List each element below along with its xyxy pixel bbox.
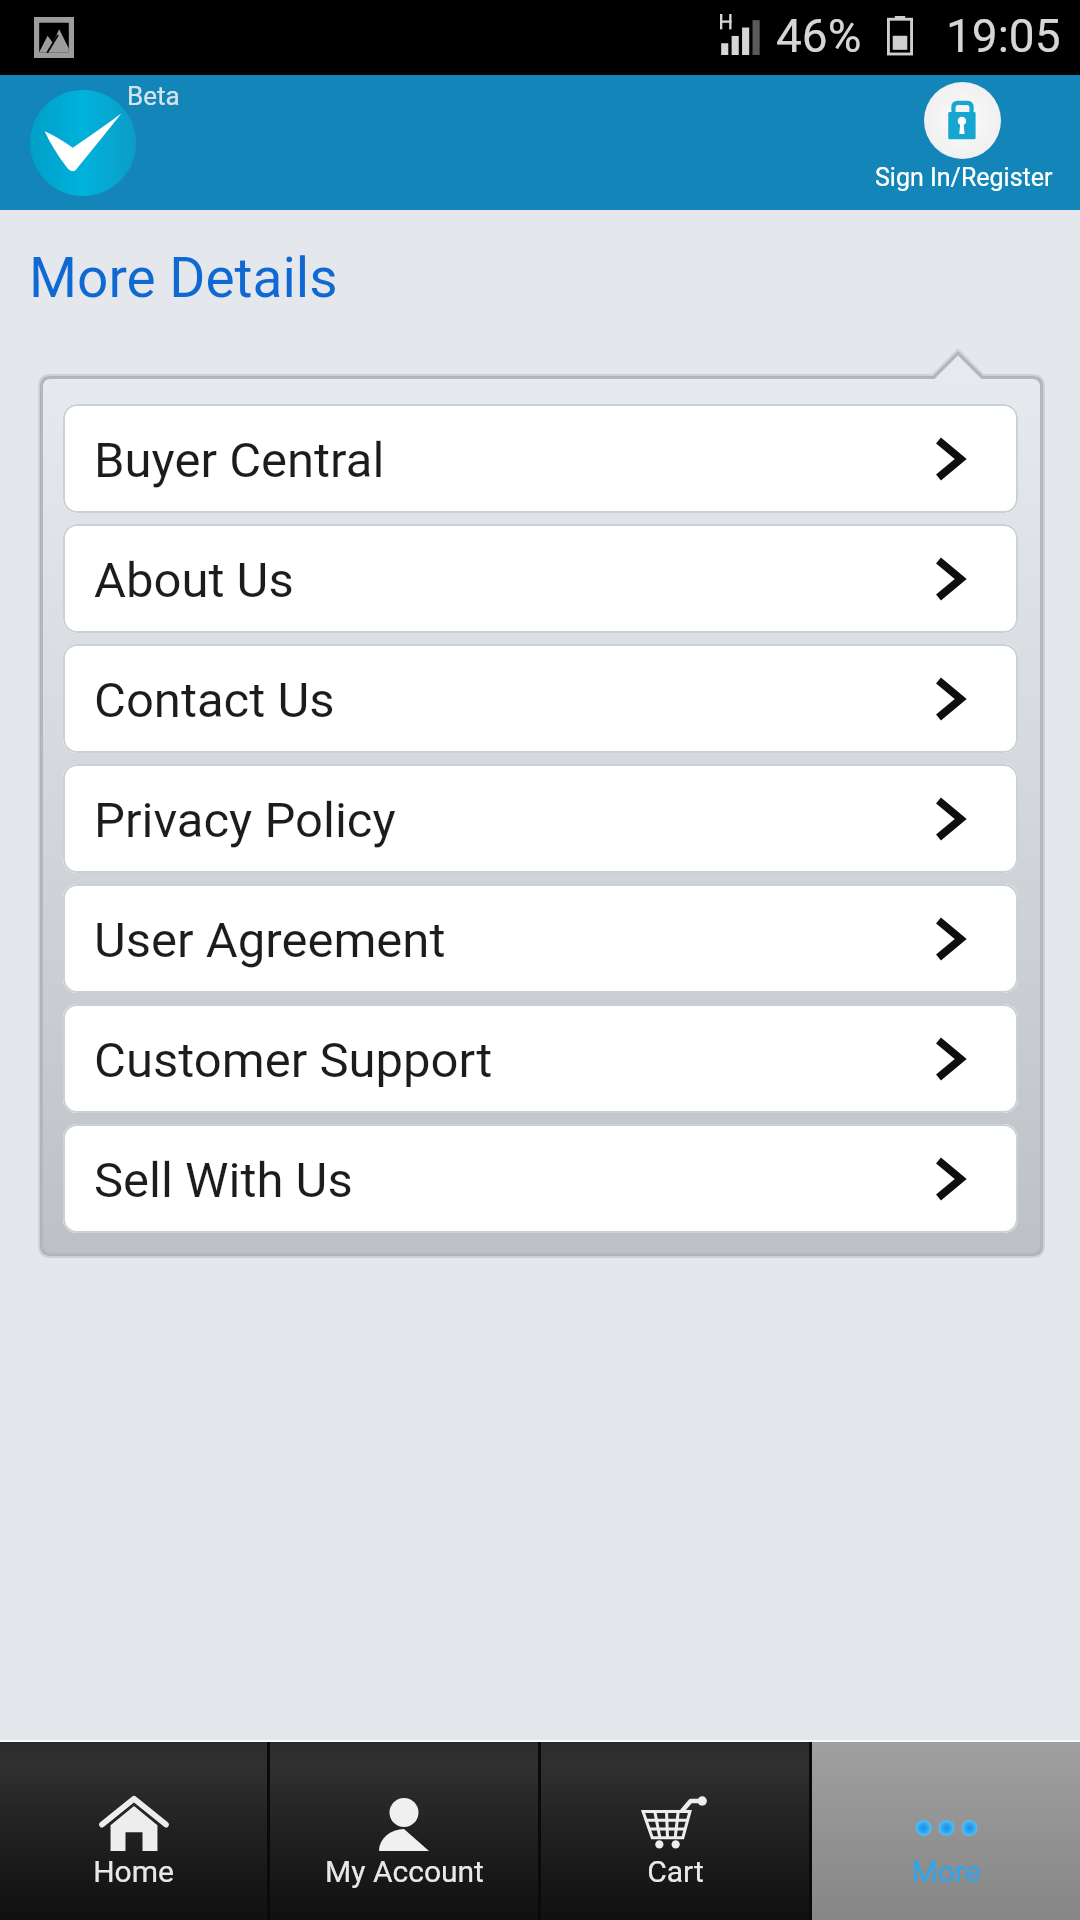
staticText: Privacy Policy bbox=[94, 792, 396, 849]
staticText: About Us bbox=[94, 552, 294, 609]
button[interactable]: Customer Support bbox=[63, 1004, 1018, 1113]
staticText: User Agreement bbox=[94, 912, 446, 969]
staticText: My Account bbox=[325, 1854, 484, 1889]
button[interactable]: Buyer Central bbox=[63, 404, 1018, 513]
staticText: Customer Support bbox=[94, 1032, 493, 1089]
staticText: More bbox=[911, 1854, 981, 1889]
button[interactable]: More bbox=[812, 1742, 1080, 1920]
button[interactable]: Home bbox=[0, 1742, 267, 1920]
button[interactable]: Cart bbox=[541, 1742, 809, 1920]
button[interactable]: Privacy Policy bbox=[63, 764, 1018, 873]
staticText: Beta bbox=[127, 81, 180, 111]
staticText: 19:05 bbox=[946, 9, 1061, 63]
staticText: 46% bbox=[776, 9, 862, 63]
button[interactable]: Sell With Us bbox=[63, 1124, 1018, 1233]
staticText: Sell With Us bbox=[94, 1152, 353, 1209]
staticText: Sign In/Register bbox=[875, 163, 1053, 192]
staticText: Home bbox=[93, 1854, 174, 1889]
button[interactable]: Sign In or Register bbox=[866, 82, 1062, 192]
button[interactable]: About Us bbox=[63, 524, 1018, 633]
staticText: More Details bbox=[29, 246, 338, 310]
staticText: Buyer Central bbox=[94, 432, 385, 489]
staticText: Cart bbox=[647, 1854, 704, 1889]
button[interactable]: My Account bbox=[270, 1742, 538, 1920]
button[interactable]: User Agreement bbox=[63, 884, 1018, 993]
button[interactable]: Contact Us bbox=[63, 644, 1018, 753]
staticText: Contact Us bbox=[94, 672, 335, 729]
